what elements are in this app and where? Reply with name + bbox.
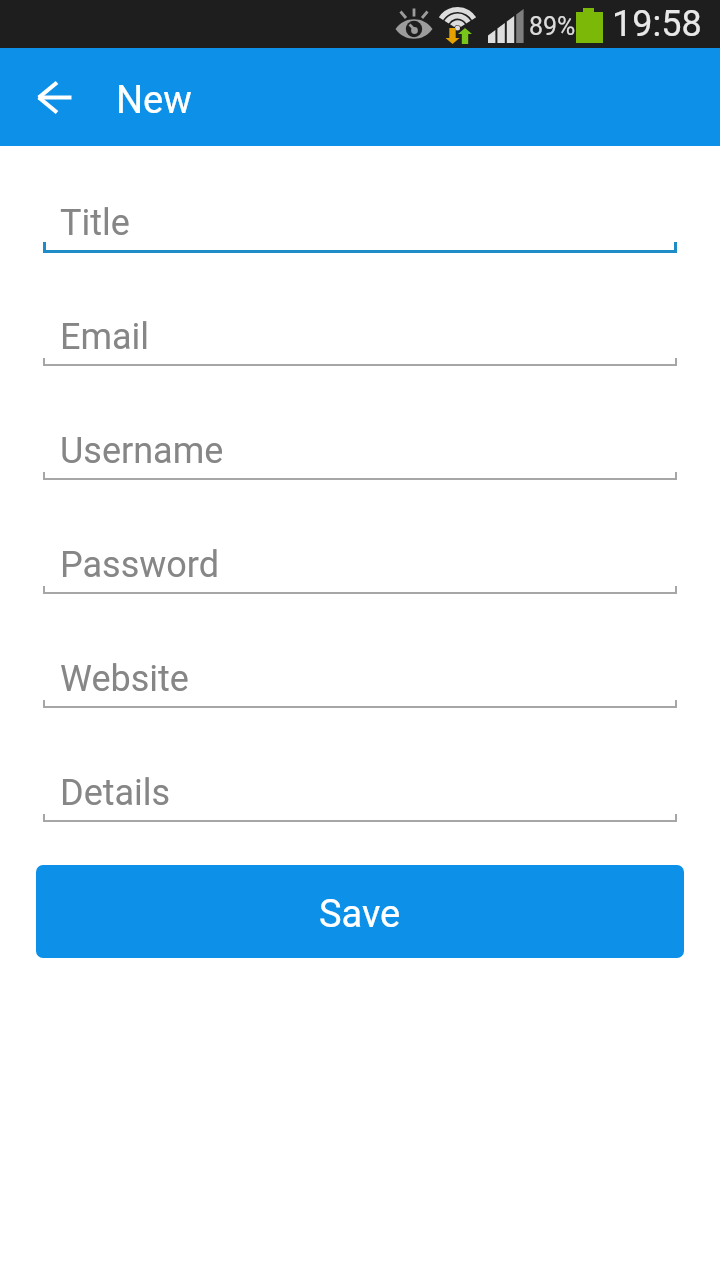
staticText: Details — [60, 772, 171, 814]
staticText: Title — [60, 202, 130, 244]
button[interactable]: Website — [0, 644, 720, 758]
staticText: Save — [319, 892, 401, 937]
button[interactable]: Username — [0, 416, 720, 530]
staticText: Email — [60, 316, 150, 358]
button[interactable]: Password — [0, 530, 720, 644]
staticText: New — [116, 78, 192, 123]
staticText: Username — [60, 430, 224, 472]
staticText: Password — [60, 544, 220, 586]
button[interactable]: Email — [0, 302, 720, 416]
button[interactable]: Title — [0, 188, 720, 302]
button[interactable]: Details — [0, 758, 720, 872]
button[interactable]: Save — [36, 865, 684, 958]
staticText: 19:58 — [612, 3, 702, 45]
staticText: Website — [60, 658, 189, 700]
other: Visibility — [394, 7, 434, 39]
staticText: 89% — [529, 12, 576, 41]
button[interactable]: Back — [22, 62, 92, 132]
